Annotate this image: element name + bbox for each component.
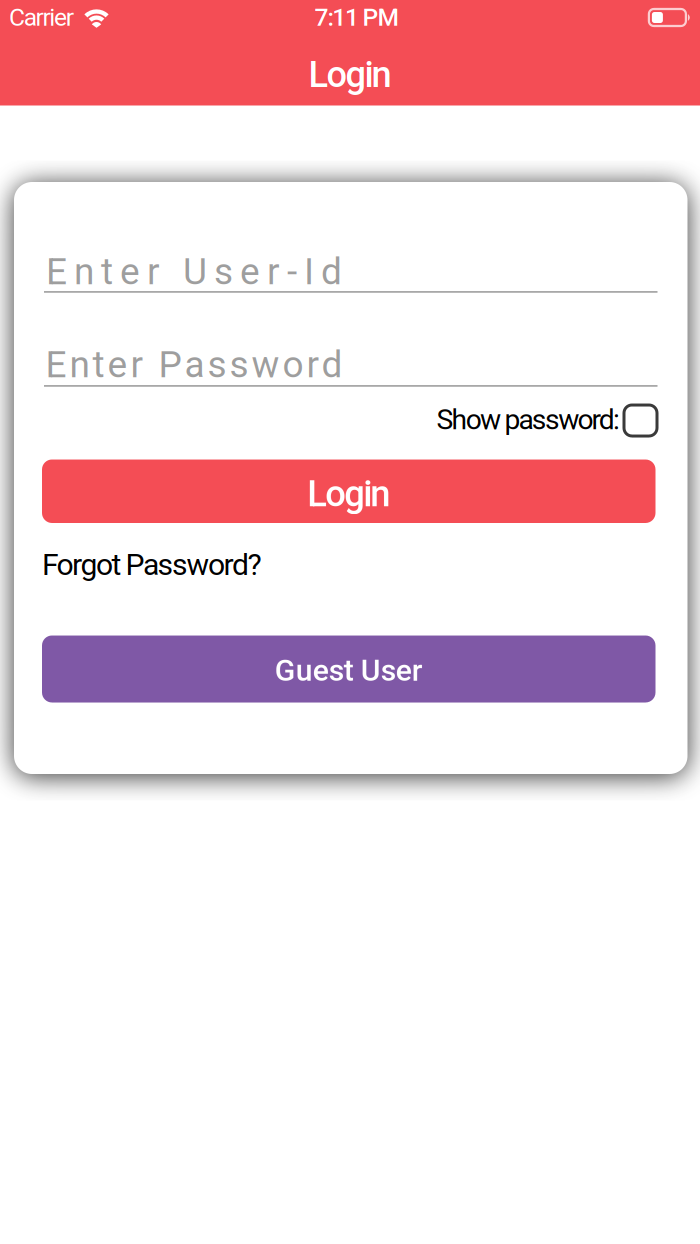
staticText: 7:11 PM <box>315 3 399 32</box>
button[interactable]: Enter Password <box>44 341 657 387</box>
staticText: Login <box>307 472 390 515</box>
staticText: Forgot Password? <box>42 547 261 582</box>
staticText: Guest User <box>275 653 423 688</box>
button[interactable]: Login <box>42 459 655 523</box>
button[interactable]: Forgot Password? <box>42 547 261 582</box>
staticText: Show password: <box>436 403 620 436</box>
staticText: Carrier <box>9 3 74 32</box>
staticText: Enter User-Id <box>46 250 342 293</box>
staticText: Login <box>308 53 391 96</box>
staticText: Enter Password <box>45 343 342 386</box>
button[interactable]: Enter User-Id <box>44 248 657 293</box>
button[interactable]: Show password <box>624 405 657 436</box>
button[interactable]: Guest User <box>42 635 655 702</box>
